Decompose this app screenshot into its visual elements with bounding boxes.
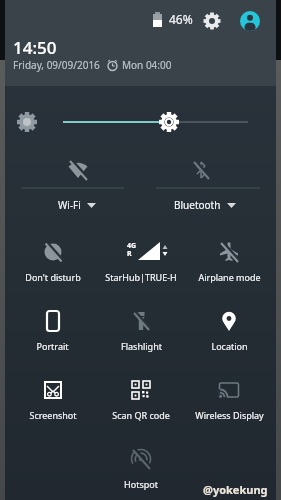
button[interactable] [203,12,221,30]
button[interactable]: Wireless Display [186,378,276,430]
button[interactable] [5,100,276,145]
staticText: R [127,249,132,259]
button[interactable]: StarHub|TRUE-H [96,240,186,292]
button[interactable]: Screenshot [5,378,96,430]
button[interactable]: Location [186,309,276,361]
staticText: 4G [127,241,137,251]
staticText: 46% [169,11,193,27]
staticText: StarHub|TRUE-H [105,271,177,283]
staticText: Hotspot [124,478,158,490]
button[interactable]: Wi-Fi [5,152,140,220]
staticText: Scan QR code [112,409,170,421]
button[interactable]: Scan QR code [96,378,186,430]
staticText: Location [211,340,248,352]
staticText: @yokekung [203,482,268,497]
button[interactable]: Flashlight [96,309,186,361]
staticText: Bluetooth [174,198,221,212]
button[interactable]: Don't disturb [5,240,96,292]
staticText: Wi-Fi [58,198,81,212]
staticText: Airplane mode [198,271,261,283]
button[interactable]: Bluetooth [140,152,276,220]
button[interactable]: Friday, 09/09/2016 [13,58,100,72]
button[interactable]: Mon 04:00 [122,58,172,72]
button[interactable]: 14:50 [13,36,57,59]
button[interactable] [153,12,163,27]
staticText: Portrait [36,340,69,352]
button[interactable]: Portrait [5,309,96,361]
staticText: Flashlight [121,340,162,352]
button[interactable]: Hotspot [95,447,186,490]
staticText: Don't disturb [25,271,81,283]
staticText: Wireless Display [195,409,264,421]
button[interactable] [239,10,261,32]
button[interactable]: Airplane mode [186,240,276,292]
staticText: Screenshot [29,409,77,421]
